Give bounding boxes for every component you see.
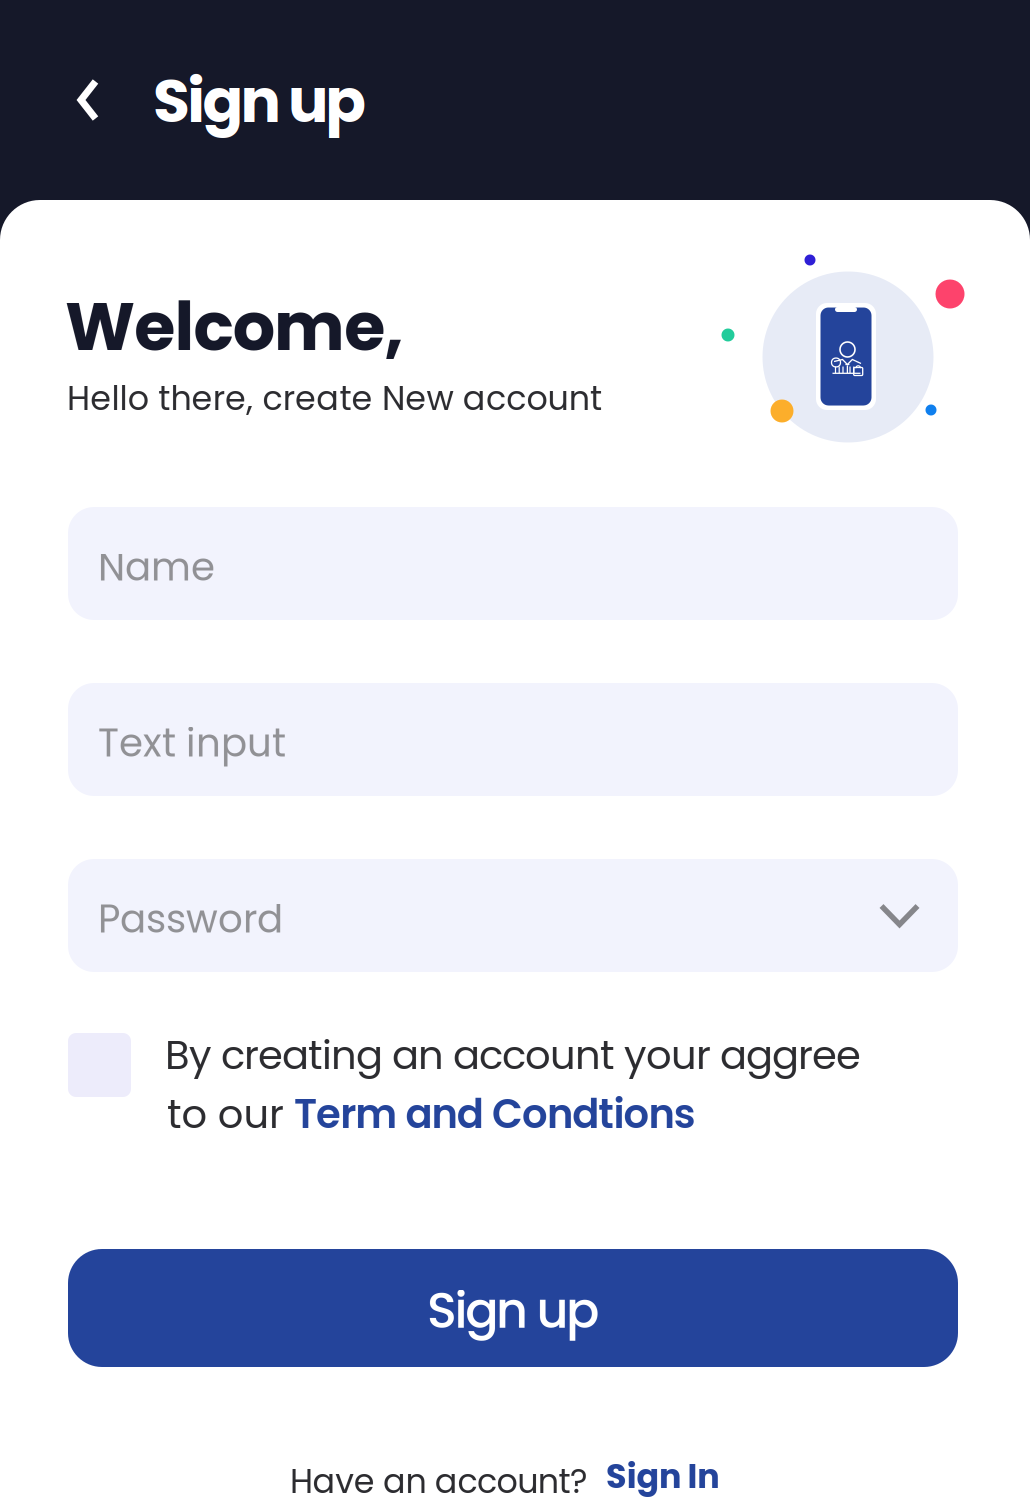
staticText: Welcome, [65,280,403,373]
staticText: Hello there, create New account [67,375,602,422]
staticText: Name [98,540,215,594]
staticText: Password [98,892,283,946]
button[interactable]: Sign up [68,1249,958,1367]
staticText: Have an account? [290,1458,587,1505]
button[interactable]: Term and Condtions [294,1086,696,1142]
button[interactable]: Back [50,58,126,142]
button[interactable]: Sign In [606,1453,719,1500]
staticText: Sign In [606,1453,719,1500]
staticText: Term and Condtions [294,1086,696,1142]
button[interactable]: Password [68,859,958,972]
button[interactable]: Name [68,507,958,620]
button[interactable]: Text input [68,683,958,796]
staticText: to our [167,1086,284,1142]
staticText: By creating an account your aggree [165,1027,861,1083]
staticText: Sign up [153,59,366,143]
staticText: Sign up [427,1276,599,1345]
staticText: Text input [98,716,286,770]
